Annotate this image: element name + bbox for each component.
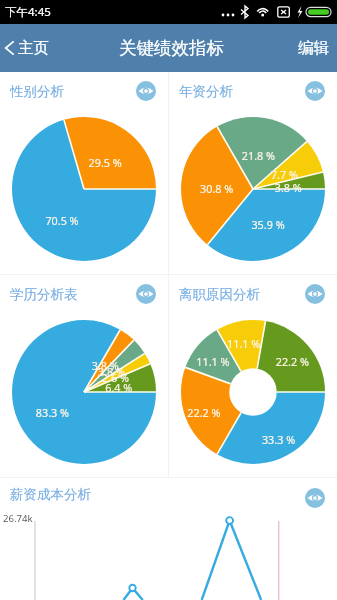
staticText: 关键绩效指标 [119,37,224,59]
button[interactable]: 薪资成本分析 [0,478,337,600]
staticText: 学历分析表 [10,286,78,303]
staticText: 主页 [18,38,49,58]
staticText: 编辑 [298,38,329,58]
button[interactable]: 主页 [0,24,57,72]
button[interactable]: 学历分析表 [0,275,168,477]
button[interactable]: 编辑 [290,24,337,72]
button[interactable]: 离职原因分析 [169,275,337,477]
staticText: 年资分析 [179,83,233,100]
button[interactable]: 性别分析 [0,72,168,274]
staticText: 薪资成本分析 [10,486,91,503]
button[interactable]: 显示 [305,284,325,304]
button[interactable]: 年资分析 [169,72,337,274]
button[interactable]: 显示 [305,81,325,101]
staticText: 26.74k [3,512,33,525]
button[interactable]: 显示 [136,81,156,101]
staticText: 下午4:45 [5,4,51,20]
button[interactable]: 显示 [136,284,156,304]
button[interactable]: 显示 [305,488,325,508]
staticText: 离职原因分析 [179,286,260,303]
staticText: 性别分析 [10,83,64,100]
